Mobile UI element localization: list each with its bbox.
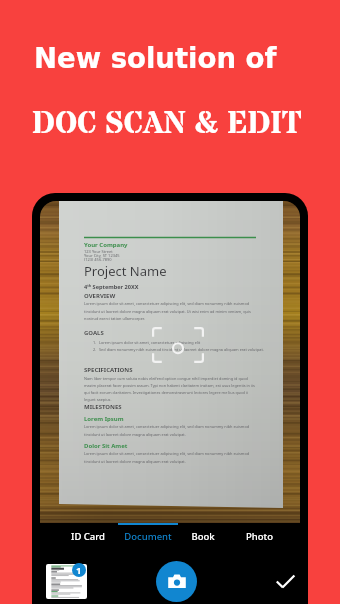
staticText: DOC SCAN & EDIT (32, 103, 302, 146)
staticText: Sed diam nonummy nibh euismod tincidunt … (99, 347, 264, 352)
staticText: 2. (93, 347, 97, 352)
staticText: Lorem ipsum dolor sit amet, consectetuer… (84, 451, 256, 464)
staticText: New solution of (34, 42, 277, 74)
button[interactable]: Done (269, 565, 301, 597)
staticText: ID Card (71, 530, 105, 543)
staticText: (123) 456-7890 (84, 257, 112, 262)
staticText: MILESTONES (84, 403, 122, 411)
staticText: 123 Your Street (84, 249, 113, 254)
button[interactable]: Document (118, 523, 178, 550)
staticText: 1 (76, 564, 82, 577)
staticText: Document (124, 530, 172, 543)
staticText: SPECIFICATIONS (84, 366, 133, 374)
staticText: Lorem ipsum dolor sit amet, consectetuer… (99, 340, 201, 345)
staticText: Project Name (84, 262, 167, 280)
staticText: Nam liber tempor cum soluta nobis eleife… (84, 376, 256, 402)
button[interactable]: Photo (233, 523, 285, 550)
staticText: 4ᵗʰ September 20XX (84, 283, 139, 291)
button[interactable]: Book (179, 523, 227, 550)
staticText: Lorem ipsum dolor sit amet, consectetuer… (84, 301, 256, 321)
staticText: Your City, ST 12345 (84, 253, 120, 258)
button[interactable]: Capture photo (156, 561, 197, 602)
button[interactable] (46, 564, 87, 599)
staticText: Lorem Ipsum (84, 415, 124, 423)
staticText: Dolor Sit Amet (84, 442, 128, 450)
button[interactable]: ID Card (66, 523, 110, 550)
staticText: Your Company (84, 241, 128, 249)
staticText: OVERVIEW (84, 292, 116, 300)
staticText: Book (191, 530, 215, 543)
staticText: Lorem ipsum dolor sit amet, consectetuer… (84, 424, 256, 437)
staticText: 1. (93, 340, 97, 345)
staticText: Photo (246, 530, 273, 543)
staticText: GOALS (84, 329, 104, 337)
